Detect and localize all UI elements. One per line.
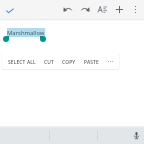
button[interactable]: Undo	[58, 0, 76, 19]
button[interactable]: CUT	[40, 53, 58, 69]
button[interactable]: Add	[111, 0, 127, 19]
staticText: Marshmallow	[7, 29, 45, 37]
staticText: CUT	[44, 59, 54, 66]
staticText: COPY	[62, 59, 76, 66]
button[interactable]: Redo	[76, 0, 94, 19]
button[interactable]: SELECT ALL	[4, 53, 40, 69]
button[interactable]: Done	[0, 0, 20, 19]
button[interactable]: Voice input	[131, 130, 141, 140]
button[interactable]: COPY	[58, 53, 80, 69]
button[interactable]: More options	[127, 0, 144, 19]
button[interactable]: Text formatting	[94, 0, 111, 19]
button[interactable]: PASTE	[80, 53, 103, 69]
button[interactable]: More	[103, 53, 118, 69]
staticText: PASTE	[84, 59, 99, 66]
staticText: SELECT ALL	[8, 59, 36, 66]
button[interactable]	[98, 126, 144, 144]
